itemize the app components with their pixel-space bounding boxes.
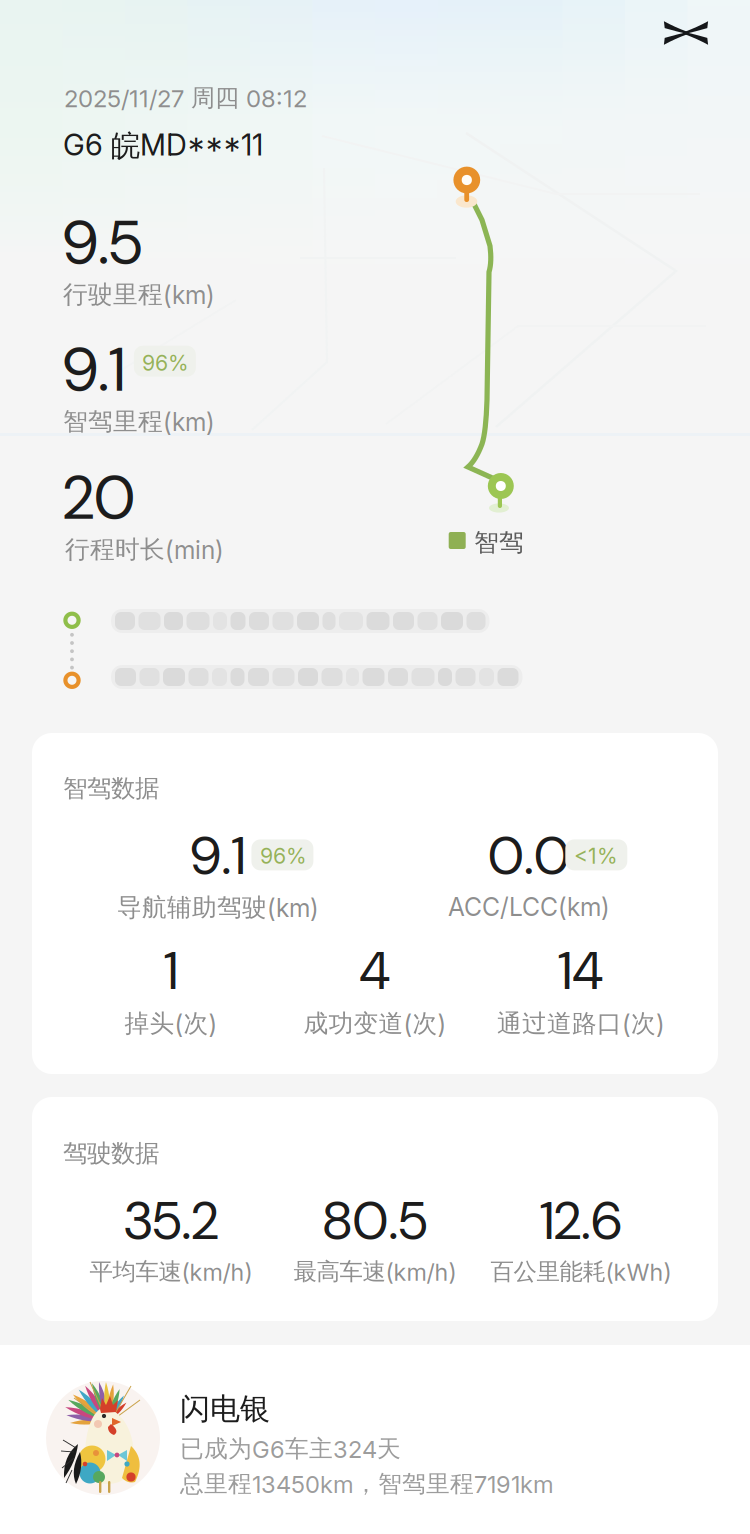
- staticText: ACC/LCC(km): [448, 892, 610, 922]
- staticText: 百公里能耗(kWh): [490, 1257, 671, 1287]
- staticText: G6 皖MD***11: [63, 127, 263, 164]
- staticText: 平均车速(km/h): [89, 1257, 252, 1287]
- staticText: 闪电银: [180, 1390, 270, 1428]
- staticText: 2025/11/27 周四 08:12: [64, 83, 307, 113]
- button[interactable]: 闪电银: [0, 0, 750, 189]
- staticText: 总里程13450km，智驾里程7191km: [180, 1469, 554, 1499]
- staticText: 通过道路口(次): [497, 1008, 665, 1039]
- staticText: 智驾: [474, 527, 524, 558]
- staticText: 4: [359, 936, 391, 1005]
- staticText: 9.1: [190, 821, 245, 890]
- staticText: 35.2: [123, 1186, 218, 1255]
- staticText: 20: [63, 458, 135, 538]
- staticText: 智驾数据: [63, 773, 159, 804]
- staticText: 96%: [142, 350, 189, 376]
- staticText: 智驾里程(km): [63, 406, 215, 437]
- staticText: 导航辅助驾驶(km): [117, 892, 319, 923]
- staticText: 80.5: [322, 1186, 427, 1255]
- staticText: 成功变道(次): [303, 1008, 446, 1039]
- staticText: 9.5: [63, 203, 142, 283]
- staticText: 0.0: [488, 821, 570, 890]
- staticText: 96%: [260, 843, 307, 869]
- staticText: 最高车速(km/h): [293, 1257, 456, 1287]
- staticText: <1%: [574, 843, 618, 869]
- staticText: 12.6: [540, 1186, 622, 1255]
- staticText: 驾驶数据: [63, 1138, 159, 1169]
- staticText: 9.1: [63, 330, 125, 410]
- staticText: 行程时长(min): [65, 534, 224, 565]
- staticText: 1: [164, 936, 178, 1005]
- staticText: 掉头(次): [124, 1008, 217, 1039]
- staticText: 已成为G6车主324天: [180, 1434, 401, 1464]
- staticText: 行驶里程(km): [63, 279, 215, 310]
- staticText: 14: [558, 936, 604, 1005]
